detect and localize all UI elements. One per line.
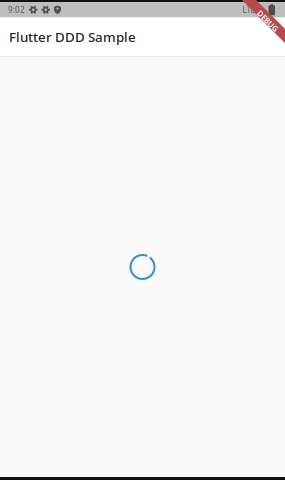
staticText: Flutter DDD Sample <box>9 28 136 46</box>
staticText: LTE <box>242 4 254 15</box>
staticText: 9:02 <box>8 4 25 15</box>
staticText: DEBUG <box>254 16 281 26</box>
